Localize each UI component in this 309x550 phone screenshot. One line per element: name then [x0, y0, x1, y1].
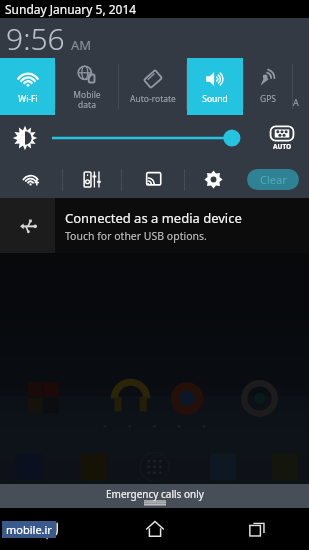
staticText: Emergency calls only: [106, 487, 204, 501]
staticText: Sunday January 5, 2014: [5, 1, 137, 17]
button[interactable]: Auto brightness: [265, 122, 299, 154]
button[interactable]: Connected as a media device: [0, 198, 309, 253]
staticText: Touch for other USB options.: [65, 229, 207, 243]
staticText: AM: [71, 36, 92, 54]
button[interactable]: Home: [103, 508, 206, 550]
staticText: Sound: [202, 93, 228, 105]
button[interactable]: Wi-Fi: [0, 58, 55, 115]
button[interactable]: Mobile data: [56, 58, 118, 115]
staticText: Wi-Fi: [18, 93, 38, 105]
button[interactable]: Clear: [247, 169, 299, 190]
staticText: Connected as a media device: [65, 209, 242, 227]
button[interactable]: Brightness slider: [52, 125, 253, 151]
button[interactable]: Sound: [187, 58, 243, 115]
button[interactable]: Cast screen: [122, 161, 184, 198]
staticText: Mobile data: [73, 89, 101, 110]
button[interactable]: Back: [0, 508, 103, 550]
button[interactable]: Sound settings: [63, 161, 121, 198]
staticText: Clear: [260, 172, 287, 187]
staticText: GPS: [260, 93, 276, 105]
button[interactable]: Recent apps: [206, 508, 309, 550]
staticText: mobile.ir: [6, 522, 52, 537]
staticText: A: [293, 96, 299, 108]
button[interactable]: Auto-rotate: [119, 58, 186, 115]
staticText: Auto-rotate: [130, 93, 176, 105]
staticText: 9:56: [6, 18, 65, 58]
button[interactable]: GPS: [244, 58, 292, 115]
button[interactable]: Wi-Fi settings: [0, 161, 62, 198]
button[interactable]: Brightness: [8, 121, 42, 155]
staticText: AUTO: [273, 142, 292, 151]
button[interactable]: Settings: [185, 161, 241, 198]
